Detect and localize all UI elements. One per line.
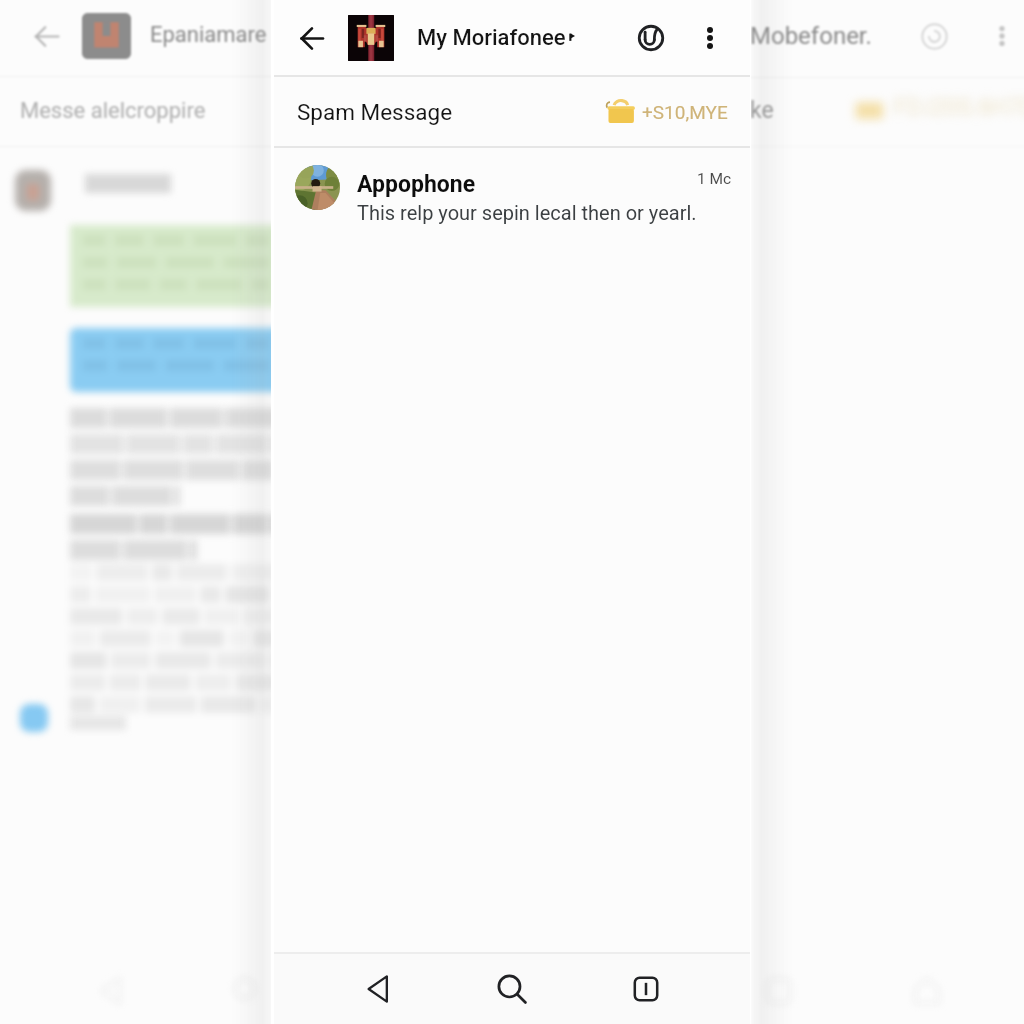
staticText: Appophone	[357, 171, 476, 198]
button[interactable]: Recents	[604, 954, 688, 1024]
staticText: Messe alelcroppire	[20, 98, 206, 124]
button[interactable]: Back	[288, 15, 334, 61]
button[interactable]: Back	[336, 954, 420, 1024]
button[interactable]: More options	[688, 16, 732, 60]
button[interactable]: Profile picture	[348, 15, 394, 61]
staticText: Epaniamare	[150, 22, 267, 48]
staticText: Mobefoner.	[750, 22, 872, 50]
button[interactable]: Appophone	[274, 148, 750, 240]
staticText: ke	[750, 97, 774, 124]
staticText: My Moriafonee	[417, 25, 566, 51]
button[interactable]: Spam Message	[274, 77, 750, 146]
staticText: This relp your sepin lecal then or yearl…	[357, 201, 697, 224]
staticText: +S10,MYE	[642, 101, 728, 123]
staticText: FD.i20S.6H7D	[894, 94, 1024, 121]
button[interactable]: Search	[470, 954, 554, 1024]
staticText: 1 Mc	[697, 170, 732, 188]
staticText: Spam Message	[297, 99, 453, 125]
button[interactable]: Status	[627, 14, 675, 62]
